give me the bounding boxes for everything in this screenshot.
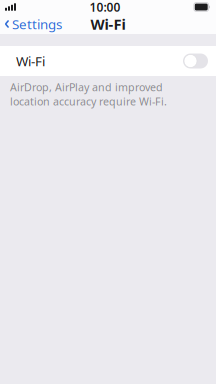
staticText: Wi-Fi bbox=[16, 52, 45, 70]
button[interactable]: Wi-Fi bbox=[0, 46, 216, 76]
staticText: Wi-Fi bbox=[90, 14, 125, 34]
button[interactable]: Settings bbox=[0, 12, 62, 36]
staticText: AirDrop, AirPlay and improved location a… bbox=[10, 80, 167, 108]
staticText: 10:00 bbox=[89, 0, 120, 15]
staticText: Settings bbox=[12, 15, 62, 33]
